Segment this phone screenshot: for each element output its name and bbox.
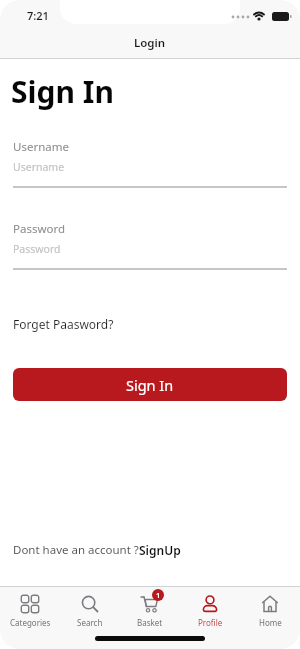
button[interactable]: Categories <box>0 594 60 628</box>
button[interactable]: Profile <box>180 594 240 628</box>
staticText: 7:21 <box>27 8 49 23</box>
staticText: Password <box>13 221 66 237</box>
button[interactable]: Forget Paasword? <box>0 0 101 16</box>
staticText: Categories <box>10 617 51 628</box>
staticText: Dont have an account ? <box>13 542 139 558</box>
staticText: Login <box>134 35 166 51</box>
staticText: Password <box>13 242 61 256</box>
staticText: Home <box>259 617 282 628</box>
staticText: Username <box>13 160 65 174</box>
button[interactable]: 1 <box>120 594 180 628</box>
staticText: Username <box>13 139 69 155</box>
button[interactable]: SignUp <box>139 542 181 558</box>
staticText: Profile <box>198 617 223 628</box>
staticText: Basket <box>137 617 163 628</box>
staticText: 1 <box>156 590 161 600</box>
button[interactable]: Home <box>240 594 300 628</box>
staticText: Sign In <box>126 375 174 395</box>
button[interactable]: Sign In <box>13 368 287 401</box>
staticText: Sign In <box>11 71 114 112</box>
staticText: Search <box>77 617 103 628</box>
button[interactable]: Search <box>60 594 120 628</box>
